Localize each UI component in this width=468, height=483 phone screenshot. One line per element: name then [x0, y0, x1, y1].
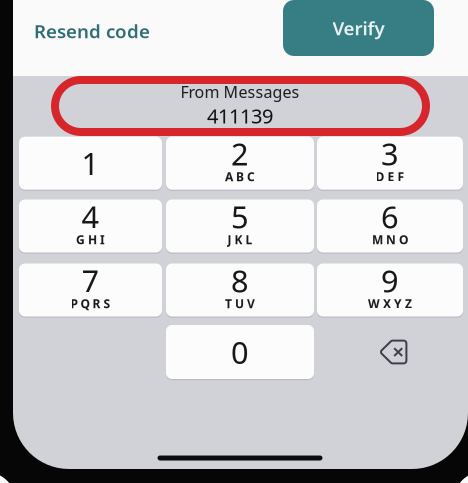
button[interactable]: 1	[19, 137, 162, 190]
button[interactable]: Resend code	[34, 10, 204, 52]
staticText: J K L	[227, 231, 252, 247]
button[interactable]: 2	[166, 137, 314, 190]
staticText: W X Y Z	[368, 295, 412, 311]
button[interactable]: From Messages	[90, 77, 390, 133]
staticText: A B C	[225, 169, 255, 185]
staticText: 5	[231, 196, 249, 237]
button[interactable]: 6	[317, 199, 463, 252]
button[interactable]: 3	[317, 137, 463, 190]
staticText: 411139	[207, 102, 273, 129]
staticText: P Q R S	[70, 295, 110, 311]
staticText: Verify	[332, 16, 384, 40]
button[interactable]: Delete	[317, 325, 463, 379]
staticText: T U V	[225, 295, 255, 311]
button[interactable]: 0	[166, 325, 314, 379]
staticText: 8	[231, 260, 249, 301]
staticText: D E F	[375, 169, 404, 185]
staticText: G H I	[76, 231, 105, 247]
staticText: 1	[81, 143, 99, 183]
staticText: From Messages	[180, 81, 299, 102]
button[interactable]: 8	[166, 263, 314, 316]
button[interactable]: Verify	[283, 0, 434, 56]
staticText: Resend code	[34, 19, 150, 43]
button[interactable]: 7	[19, 263, 162, 316]
staticText: M N O	[372, 231, 408, 247]
button[interactable]: 4	[19, 199, 162, 252]
staticText: 7	[81, 260, 99, 301]
staticText: 0	[231, 332, 249, 372]
button[interactable]: 9	[317, 263, 463, 316]
staticText: 4	[81, 196, 99, 237]
staticText: 9	[381, 260, 399, 301]
staticText: 3	[381, 133, 399, 174]
staticText: 6	[381, 196, 399, 237]
button[interactable]: 5	[166, 199, 314, 252]
staticText: 2	[231, 133, 249, 174]
